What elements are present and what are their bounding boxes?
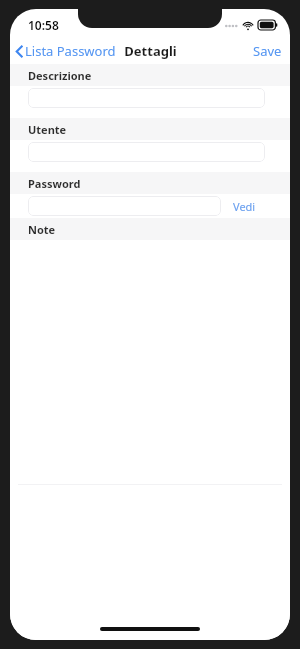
staticText: Vedi xyxy=(233,199,256,214)
staticText: Descrizione xyxy=(28,68,92,83)
staticText: Dettagli xyxy=(124,42,177,60)
button[interactable] xyxy=(28,196,221,216)
button[interactable] xyxy=(28,88,265,108)
button[interactable]: Save xyxy=(245,39,290,63)
staticText: Save xyxy=(253,42,282,60)
staticText: Note xyxy=(28,222,56,237)
staticText: Utente xyxy=(28,122,67,137)
button[interactable]: Vedi xyxy=(231,197,258,216)
button[interactable]: Lista Password xyxy=(10,40,122,62)
staticText: Password xyxy=(28,176,81,191)
staticText: 10:58 xyxy=(28,17,59,33)
staticText: Lista Password xyxy=(25,42,116,60)
button[interactable] xyxy=(28,142,265,162)
